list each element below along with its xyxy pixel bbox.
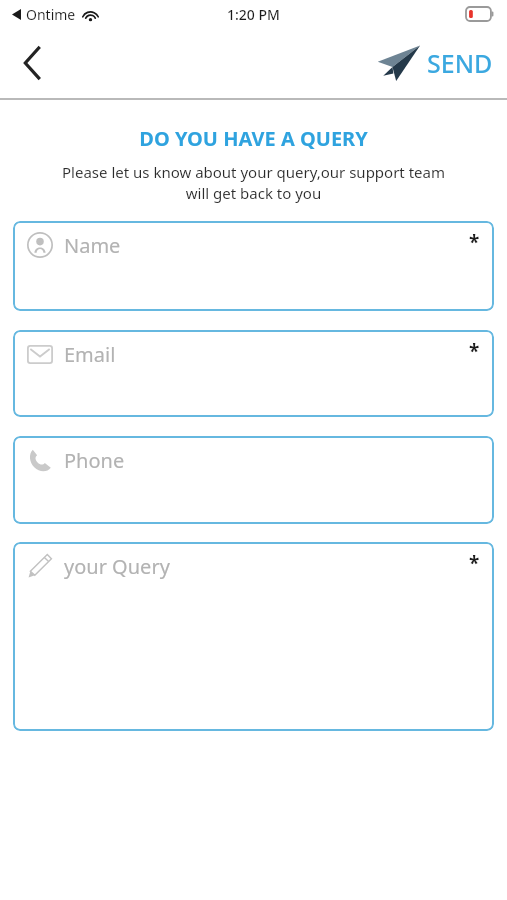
staticText: 1:20 PM [227,5,280,24]
button[interactable]: Back [6,37,58,89]
staticText: Email [64,341,116,368]
staticText: * [469,550,480,576]
staticText: Name [64,232,121,259]
staticText: Ontime [26,5,76,24]
button[interactable]: SEND [375,43,493,83]
staticText: Please let us know about your query,our … [14,162,493,204]
staticText: * [469,229,480,255]
button[interactable]: Name [13,221,494,311]
staticText: SEND [427,46,493,80]
button[interactable]: your Query [13,542,494,731]
staticText: * [469,338,480,364]
button[interactable]: Phone [13,436,494,524]
staticText: DO YOU HAVE A QUERY [0,125,507,152]
staticText: your Query [64,553,170,580]
button[interactable]: Email [13,330,494,417]
staticText: Phone [64,447,125,474]
